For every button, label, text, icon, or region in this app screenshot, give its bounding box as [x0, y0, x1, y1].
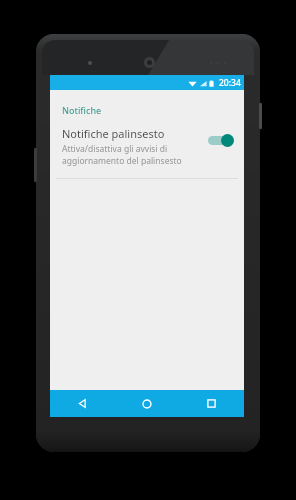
button[interactable]: Back [50, 390, 114, 417]
staticText: Notifiche palinsesto [62, 126, 165, 141]
button[interactable]: Notifiche palinsesto [50, 118, 244, 173]
button[interactable]: Recent apps [179, 390, 244, 417]
staticText: Attiva/disattiva gli avvisi di [62, 143, 168, 155]
button[interactable]: Home [114, 390, 179, 417]
staticText: 20:34 [219, 77, 241, 89]
staticText: aggiornamento del palinsesto [62, 155, 182, 167]
staticText: Notifiche [62, 104, 102, 116]
button[interactable]: Notifiche palinsesto toggle [206, 132, 234, 148]
